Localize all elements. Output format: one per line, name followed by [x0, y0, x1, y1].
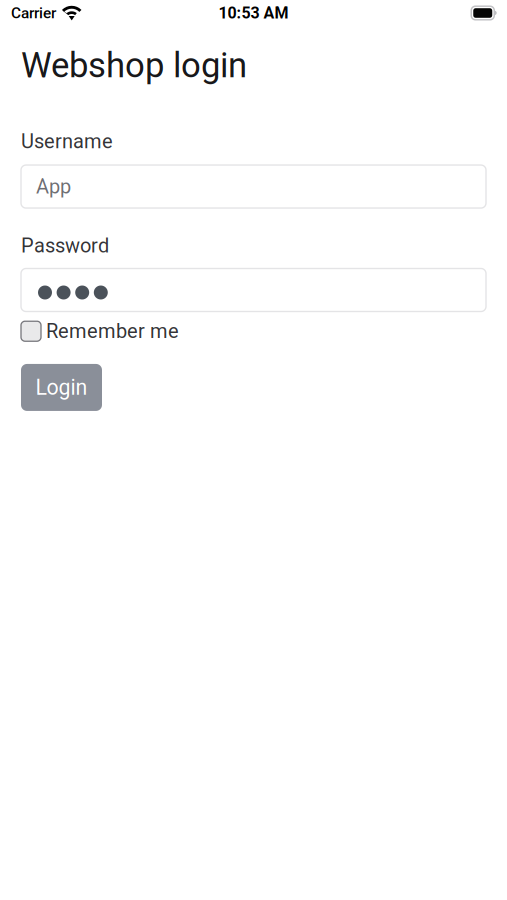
staticText: Password	[21, 234, 109, 257]
button[interactable]: Login	[21, 364, 102, 411]
staticText: Username	[21, 130, 113, 153]
button[interactable]: Remember me	[21, 319, 179, 343]
staticText: 10:53 AM	[218, 4, 288, 22]
button[interactable]	[21, 268, 486, 311]
staticText: Remember me	[46, 319, 179, 343]
staticText: Login	[35, 375, 87, 400]
staticText: Carrier	[11, 4, 56, 22]
button[interactable]: App	[21, 165, 486, 208]
staticText: Webshop login	[21, 45, 247, 86]
staticText: App	[36, 175, 71, 198]
